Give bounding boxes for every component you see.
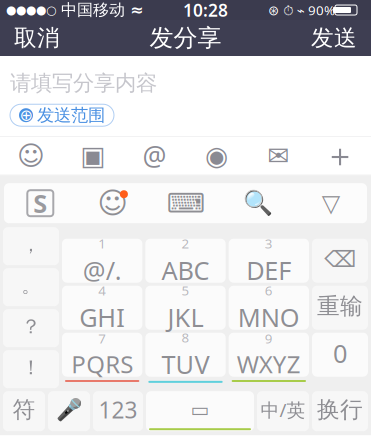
button[interactable]: 中/英 — [257, 391, 309, 431]
button[interactable]: ！ — [3, 350, 59, 388]
staticText: 3 — [265, 234, 273, 252]
staticText: ●●●●○ — [6, 3, 56, 17]
staticText: ≈ — [130, 1, 143, 19]
button[interactable]: 。 — [3, 268, 59, 306]
staticText: 中/英 — [260, 397, 305, 422]
button[interactable]: 5 — [145, 286, 226, 330]
button[interactable]: 0 — [312, 333, 368, 377]
staticText: 9 — [265, 329, 273, 347]
staticText: 4 — [98, 281, 106, 299]
button[interactable]: 🎤 — [48, 391, 90, 431]
staticText: ✉ — [267, 141, 289, 171]
button[interactable]: 2 — [145, 239, 226, 283]
staticText: 🎤 — [55, 397, 82, 422]
staticText: WXYZ — [237, 348, 301, 380]
staticText: 取消 — [14, 24, 60, 52]
staticText: 🔍 — [243, 189, 273, 217]
staticText: MNO — [238, 300, 300, 334]
staticText: 1 — [98, 234, 106, 252]
staticText: 6 — [265, 281, 273, 299]
staticText: ⌫ — [324, 246, 356, 272]
staticText: S — [33, 186, 47, 220]
button[interactable]: Mention — [124, 136, 185, 175]
button[interactable]: 发送 — [297, 20, 371, 56]
staticText: PQRS — [71, 348, 133, 380]
staticText: 请填写分享内容 — [10, 70, 157, 96]
staticText: 换行 — [317, 396, 363, 424]
staticText: ？ — [21, 314, 41, 339]
button[interactable]: Emoji — [77, 186, 149, 220]
button[interactable]: Emoji — [0, 136, 62, 175]
staticText: 2 — [181, 234, 189, 252]
button[interactable]: 3 — [229, 239, 309, 283]
staticText: ！ — [21, 355, 41, 380]
button[interactable]: More — [309, 136, 371, 175]
staticText: ＋ — [324, 136, 356, 175]
button[interactable]: 1 — [62, 239, 142, 283]
staticText: TUV — [161, 347, 209, 381]
staticText: @/. — [83, 253, 122, 287]
button[interactable]: 123 — [93, 391, 143, 431]
staticText: 符 — [12, 396, 35, 424]
staticText: 8 — [181, 328, 189, 346]
staticText: ⊕ — [19, 106, 32, 124]
staticText: 0 — [333, 336, 347, 370]
staticText: ⌨ — [166, 188, 204, 218]
staticText: DEF — [246, 253, 291, 287]
staticText: ☺ — [97, 187, 128, 220]
staticText: 10:28 — [183, 0, 228, 21]
staticText: ， — [21, 233, 40, 256]
staticText: 重输 — [317, 292, 363, 320]
staticText: ☺ — [17, 141, 45, 171]
staticText: 。 — [21, 274, 40, 297]
staticText: 发送范围 — [37, 105, 105, 126]
button[interactable]: ？ — [3, 309, 59, 347]
button[interactable]: ⌫ — [312, 239, 368, 283]
staticText: ▭ — [190, 398, 209, 421]
button[interactable]: 7 — [62, 333, 142, 377]
button[interactable]: 6 — [229, 286, 309, 330]
staticText: 发送 — [311, 24, 357, 52]
staticText: JKL — [167, 300, 203, 334]
button[interactable]: ， — [3, 227, 59, 265]
button[interactable]: Location — [185, 136, 247, 175]
staticText: ▣ — [80, 141, 105, 171]
button[interactable]: Hide keyboard — [294, 186, 367, 220]
button[interactable]: Sogou input — [4, 189, 77, 217]
button[interactable]: 重输 — [312, 286, 368, 330]
staticText: ▽ — [322, 190, 340, 217]
button[interactable]: ⊕ — [10, 104, 114, 126]
staticText: GHI — [79, 300, 125, 334]
staticText: 发分享 — [149, 23, 221, 53]
staticText: ABC — [161, 253, 209, 287]
button[interactable]: Keyboard layout — [149, 186, 222, 220]
button[interactable]: 8 — [145, 333, 226, 377]
button[interactable]: 换行 — [312, 391, 368, 431]
button[interactable]: 取消 — [0, 20, 74, 56]
staticText: 中国移动 — [56, 0, 130, 20]
staticText: 7 — [98, 329, 106, 347]
button[interactable]: Mail — [247, 136, 309, 175]
button[interactable]: 4 — [62, 286, 142, 330]
button[interactable]: 9 — [229, 333, 309, 377]
staticText: @ — [143, 138, 167, 173]
button[interactable]: Camera — [62, 136, 124, 175]
staticText: ⊛ ⏱ ⌁ 90% — [268, 1, 335, 19]
button[interactable]: 符 — [3, 391, 45, 431]
staticText: ◉ — [205, 141, 228, 171]
button[interactable]: ▭ — [146, 391, 254, 431]
staticText: 5 — [181, 281, 189, 299]
staticText: 123 — [98, 395, 137, 425]
button[interactable]: Search — [222, 186, 294, 220]
